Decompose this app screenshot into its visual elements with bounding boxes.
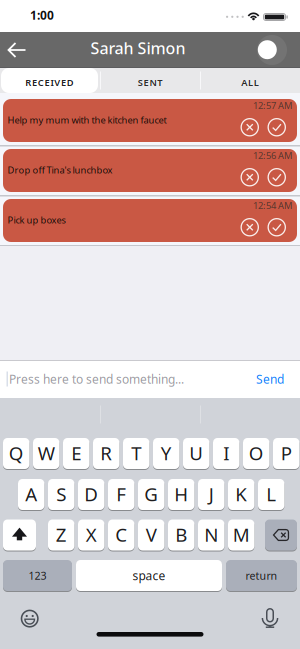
staticText: H [174, 482, 188, 506]
staticText: N [204, 522, 218, 547]
button[interactable]: Delete [265, 519, 297, 551]
button[interactable]: Decline [240, 118, 259, 136]
staticText: D [84, 482, 98, 506]
button[interactable]: R [93, 437, 119, 469]
button[interactable]: SENT [101, 68, 199, 93]
button[interactable]: 12:57 AM [3, 99, 297, 142]
button[interactable]: return [226, 559, 297, 591]
button[interactable]: Message field [9, 360, 229, 398]
button[interactable]: V [138, 519, 164, 551]
staticText: L [266, 482, 276, 506]
staticText: E [71, 441, 81, 465]
staticText: M [233, 522, 250, 547]
staticText: V [146, 522, 157, 547]
staticText: X [86, 522, 97, 547]
staticText: Sarah Simon [90, 37, 185, 59]
button[interactable]: 12:56 AM [3, 149, 297, 192]
staticText: P [281, 441, 292, 465]
staticText: U [189, 441, 203, 465]
staticText: G [144, 482, 158, 506]
button[interactable]: I [213, 437, 239, 469]
button[interactable]: X [78, 519, 104, 551]
button[interactable]: L [258, 478, 284, 510]
button[interactable]: N [198, 519, 224, 551]
staticText: return [245, 568, 277, 583]
staticText: B [175, 522, 187, 547]
staticText: C [115, 522, 127, 547]
button[interactable]: S [48, 478, 74, 510]
staticText: Q [9, 441, 24, 465]
button[interactable]: ALL [201, 68, 299, 93]
staticText: W [38, 441, 55, 465]
button[interactable]: A [18, 478, 44, 510]
staticText: Press here to send something... [9, 371, 184, 387]
button[interactable]: Z [48, 519, 74, 551]
staticText: RECEIVED [25, 76, 74, 89]
staticText: I [223, 441, 229, 465]
staticText: F [116, 482, 126, 506]
button[interactable]: Accept [267, 118, 286, 136]
button[interactable]: G [138, 478, 164, 510]
staticText: Y [161, 441, 172, 465]
staticText: 123 [28, 568, 46, 583]
button[interactable]: B [168, 519, 194, 551]
button[interactable]: Send [234, 360, 284, 398]
button[interactable]: Q [3, 437, 29, 469]
button[interactable]: Decline [240, 218, 259, 236]
button[interactable]: Emoji [18, 607, 42, 631]
staticText: 1:00 [30, 7, 54, 23]
staticText: O [249, 441, 264, 465]
button[interactable]: Accept [267, 218, 286, 236]
button[interactable]: W [33, 437, 59, 469]
button[interactable]: H [168, 478, 194, 510]
button[interactable]: T [123, 437, 149, 469]
button[interactable]: RECEIVED [1, 68, 98, 93]
button[interactable]: Back [0, 32, 34, 68]
button[interactable]: Shift [3, 519, 36, 551]
button[interactable]: Profile [250, 32, 286, 68]
staticText: K [235, 482, 247, 506]
staticText: J [209, 482, 214, 506]
staticText: A [25, 482, 37, 506]
staticText: Send [256, 371, 284, 387]
button[interactable]: 12:54 AM [3, 199, 297, 242]
staticText: 12:56 AM [253, 149, 292, 162]
button[interactable]: E [63, 437, 89, 469]
button[interactable]: Accept [267, 168, 286, 186]
staticText: 12:54 AM [253, 199, 292, 212]
button[interactable]: O [243, 437, 269, 469]
button[interactable]: P [273, 437, 299, 469]
button[interactable]: Y [153, 437, 179, 469]
staticText: ALL [241, 76, 259, 89]
staticText: S [56, 482, 66, 506]
button[interactable]: Dictate [258, 604, 282, 628]
button[interactable]: U [183, 437, 209, 469]
button[interactable]: K [228, 478, 254, 510]
staticText: R [100, 441, 112, 465]
staticText: Help my mum with the kitchen faucet [7, 114, 166, 126]
staticText: 12:57 AM [253, 99, 292, 112]
staticText: space [132, 567, 165, 583]
button[interactable]: space [76, 559, 222, 591]
staticText: T [131, 441, 141, 465]
button[interactable]: M [228, 519, 254, 551]
button[interactable]: F [108, 478, 134, 510]
button[interactable]: C [108, 519, 134, 551]
button[interactable]: Decline [240, 168, 259, 186]
button[interactable]: J [198, 478, 224, 510]
button[interactable]: D [78, 478, 104, 510]
staticText: Pick up boxes [7, 214, 65, 226]
staticText: Drop off Tina's lunchbox [7, 164, 112, 176]
button[interactable]: 123 [3, 559, 72, 591]
staticText: SENT [138, 76, 162, 89]
staticText: Z [56, 522, 67, 547]
